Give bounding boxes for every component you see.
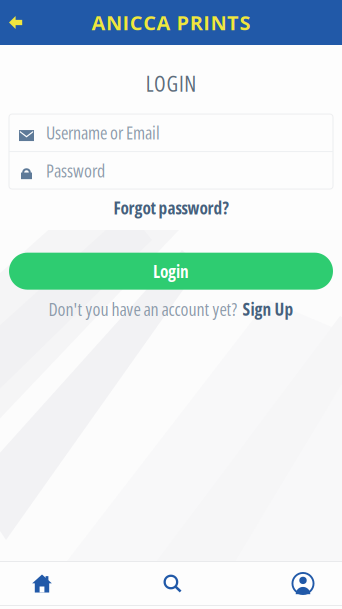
button[interactable]: Login (9, 253, 333, 290)
button[interactable]: Forgot password? (105, 189, 236, 223)
button[interactable]: Profile (265, 562, 341, 605)
staticText: ANICCA PRINTS (92, 9, 250, 36)
button[interactable]: Back (0, 0, 52, 45)
staticText: Don't you have an account yet? (48, 297, 237, 321)
button[interactable]: Sign Up (242, 297, 293, 321)
button[interactable]: Home (4, 562, 80, 605)
staticText: Sign Up (242, 297, 293, 321)
staticText: Password (46, 158, 105, 183)
staticText: Login (153, 259, 189, 283)
button[interactable]: Search (134, 562, 210, 605)
staticText: LOGIN (146, 69, 196, 98)
staticText: Username or Email (46, 120, 160, 145)
staticText: Forgot password? (113, 196, 228, 220)
